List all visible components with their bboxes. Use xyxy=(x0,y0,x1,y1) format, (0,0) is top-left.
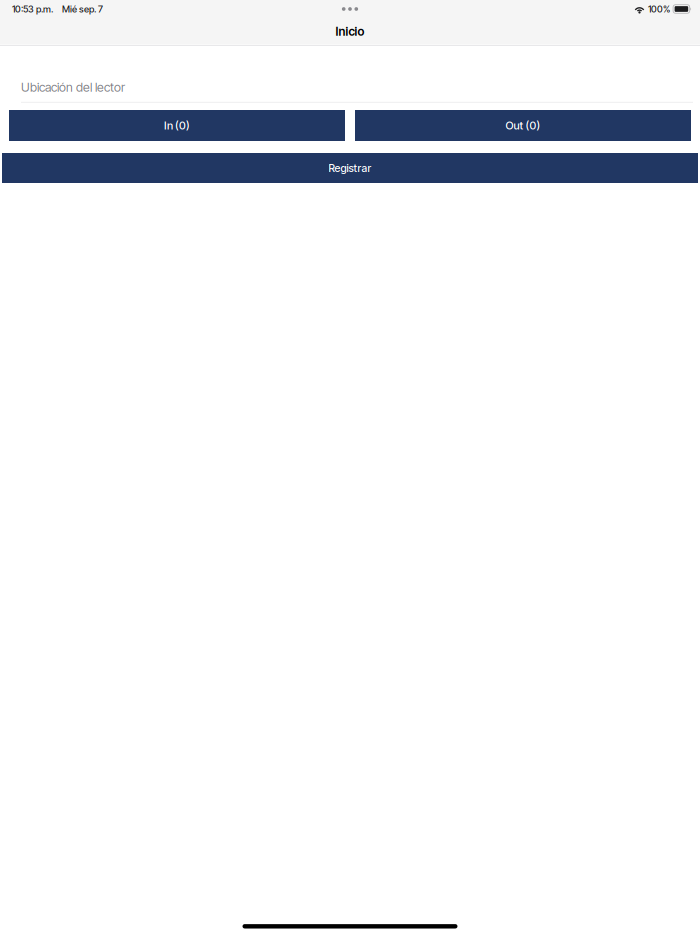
button[interactable]: In (0) xyxy=(9,110,345,141)
staticText: Out (0) xyxy=(505,119,540,132)
staticText: Inicio xyxy=(335,24,364,39)
staticText: Registrar xyxy=(328,161,371,174)
button[interactable]: Ubicación del lector xyxy=(0,46,700,103)
button[interactable]: Registrar xyxy=(2,153,698,183)
button[interactable]: Out (0) xyxy=(355,110,691,141)
staticText: Ubicación del lector xyxy=(21,80,125,95)
staticText: 10:53 p.m. xyxy=(12,3,53,15)
staticText: Mié sep. 7 xyxy=(62,3,103,15)
staticText: In (0) xyxy=(164,119,190,132)
staticText: 100% xyxy=(648,3,670,15)
